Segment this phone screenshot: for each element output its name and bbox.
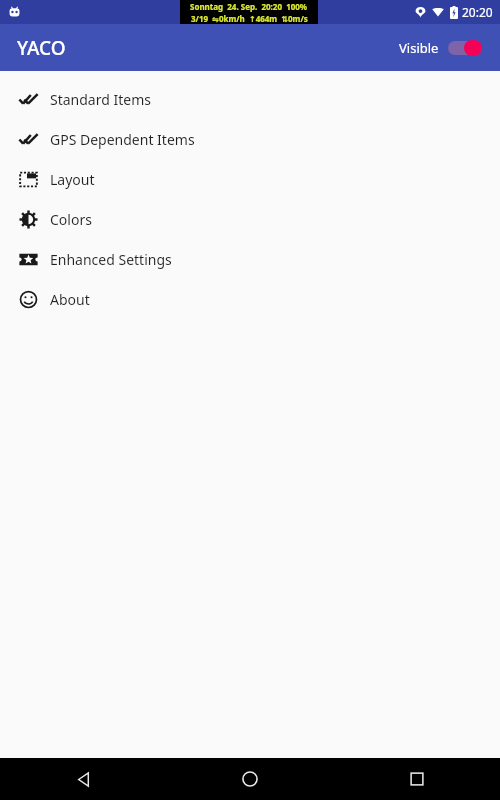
staticText: Enhanced Settings: [50, 250, 172, 269]
button[interactable]: Back: [0, 758, 166, 800]
staticText: Layout: [50, 170, 95, 189]
staticText: YACO: [17, 35, 66, 61]
button[interactable]: Colors: [0, 199, 500, 239]
staticText: GPS Dependent Items: [50, 130, 195, 149]
button[interactable]: Recent apps: [333, 758, 500, 800]
staticText: Colors: [50, 210, 92, 229]
staticText: Sonntag 24. Sep. 20:20 100%: [190, 1, 308, 12]
button[interactable]: Layout: [0, 159, 500, 199]
button[interactable]: Enhanced Settings: [0, 239, 500, 279]
staticText: 20:20: [462, 4, 493, 20]
button[interactable]: Home: [166, 758, 333, 800]
button[interactable]: GPS Dependent Items: [0, 119, 500, 159]
staticText: 3/19 ⇋0km/h ↑464m ⇅0m/s: [191, 13, 308, 24]
button[interactable]: About: [0, 279, 500, 319]
button[interactable]: Visible: [395, 35, 486, 61]
button[interactable]: Standard Items: [0, 79, 500, 119]
staticText: About: [50, 290, 90, 309]
staticText: Standard Items: [50, 90, 151, 109]
staticText: Visible: [399, 39, 439, 57]
